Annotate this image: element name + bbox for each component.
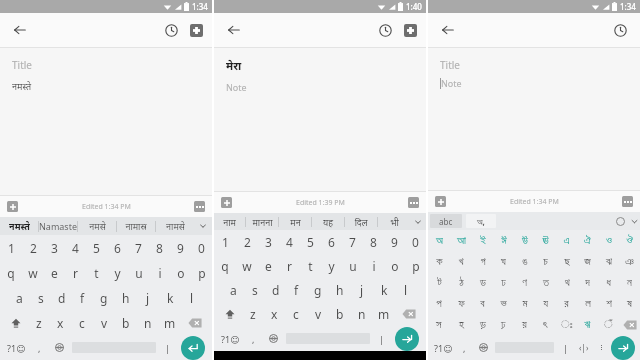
button[interactable]: Shift [3,310,28,335]
button[interactable]: a [223,278,244,302]
button[interactable]: m [159,310,181,335]
button[interactable]: ঠ [450,272,472,293]
button[interactable]: দ [577,272,598,293]
button[interactable]: ৎ [535,314,556,335]
button[interactable]: x [49,310,71,335]
button[interactable]: Archive [190,24,203,37]
button[interactable]: मन [279,213,311,230]
button[interactable]: 3 [44,235,65,260]
button[interactable]: ব [472,293,493,314]
button[interactable]: u [128,260,149,285]
button[interactable]: ?1☺ [217,326,244,351]
button[interactable]: ঔ [619,230,640,251]
button[interactable]: Namaste [39,217,77,235]
button[interactable]: ছ [556,251,577,272]
button[interactable]: , [244,326,263,351]
button[interactable]: o [170,260,191,285]
button[interactable]: नाम [214,213,245,230]
button[interactable]: | [372,326,391,351]
button[interactable]: Change language [263,326,284,351]
button[interactable]: Back [223,19,245,41]
button[interactable]: n [137,310,159,335]
button[interactable]: ধ [598,272,619,293]
button[interactable]: অ [428,230,450,251]
button[interactable] [594,335,608,360]
button[interactable]: 0 [191,235,212,260]
button[interactable]: नमस्ते [0,217,38,235]
button[interactable]: h [329,278,351,302]
button[interactable]: Add [7,201,18,212]
button[interactable]: e [44,260,65,285]
button[interactable]: ?1☺ [431,335,456,360]
button[interactable]: ক [428,251,450,272]
button[interactable]: x [263,302,285,326]
button[interactable]: ণ [514,272,535,293]
button[interactable]: ত [535,272,556,293]
button[interactable]: 6 [107,235,128,260]
button[interactable]: , [30,335,49,360]
button[interactable]: থ [556,272,577,293]
button[interactable]: Change language [49,335,70,360]
button[interactable]: Reminder [374,19,396,41]
button[interactable]: k [373,278,395,302]
button[interactable]: ঢ় [493,314,514,335]
button[interactable]: f [72,285,93,310]
button[interactable]: n [351,302,373,326]
button[interactable]: Back [9,19,31,41]
button[interactable]: য [535,293,556,314]
button[interactable]: w [236,254,258,278]
button[interactable]: m [373,302,395,326]
button[interactable]: ট [428,272,450,293]
button[interactable]: q [0,260,22,285]
button[interactable]: c [285,302,307,326]
button[interactable]: Backspace [395,302,423,326]
button[interactable]: গ [472,251,493,272]
button[interactable]: Backspace [619,314,640,335]
button[interactable]: | [158,335,177,360]
button[interactable]: ম [514,293,535,314]
button[interactable]: খ [450,251,472,272]
button[interactable]: 4 [65,235,86,260]
button[interactable]: 7 [342,230,363,254]
button[interactable]: t [300,254,321,278]
button[interactable]: l [395,278,417,302]
button[interactable]: यह [312,213,344,230]
button[interactable]: 1 [214,230,236,254]
button[interactable]: i [149,260,170,285]
button[interactable]: ষ [619,293,640,314]
button[interactable]: Enter [181,336,205,360]
button[interactable]: 4 [279,230,300,254]
button[interactable]: ভ [493,293,514,314]
button[interactable]: ড় [472,314,493,335]
button[interactable]: d [265,278,286,302]
button[interactable]: আ [450,230,472,251]
button[interactable]: ই [472,230,493,251]
button[interactable]: More options [194,201,205,212]
button[interactable]: d [51,285,72,310]
button[interactable]: g [307,278,329,302]
button[interactable]: Help [612,213,628,229]
button[interactable]: a [9,285,30,310]
button[interactable]: Reminder [609,19,631,41]
button[interactable]: | [556,335,574,360]
button[interactable]: l [181,285,203,310]
button[interactable]: ঞ [619,251,640,272]
button[interactable]: ড [472,272,493,293]
button[interactable]: Change language [473,335,493,360]
button[interactable]: ঁ [598,314,619,335]
button[interactable]: z [28,310,49,335]
button[interactable]: u [342,254,363,278]
button[interactable]: p [191,260,212,285]
button[interactable]: o [384,254,405,278]
button[interactable]: শ [598,293,619,314]
button[interactable]: অ, [466,214,496,228]
button[interactable]: Backspace [181,310,209,335]
button[interactable]: t [86,260,107,285]
button[interactable]: , [456,335,473,360]
button[interactable]: 3 [258,230,279,254]
button[interactable]: ?1☺ [3,335,30,360]
button[interactable]: ল [577,293,598,314]
button[interactable]: z [242,302,263,326]
